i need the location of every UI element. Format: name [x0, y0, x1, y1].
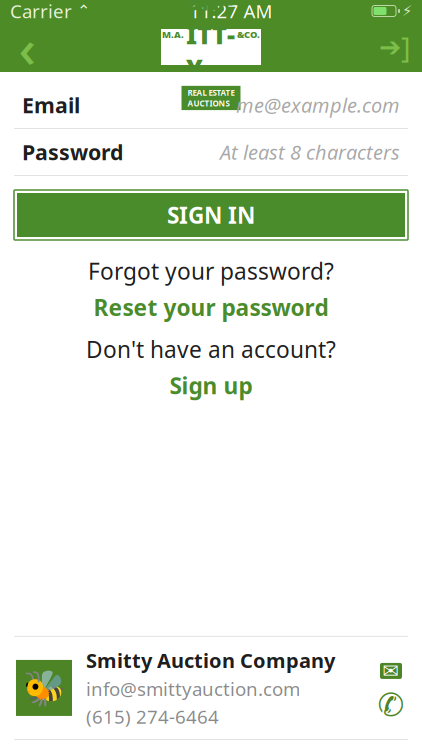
staticText: 🐝: [22, 668, 65, 708]
button[interactable]: Back: [0, 22, 54, 72]
staticText: At least 8 characters: [220, 139, 400, 165]
staticText: ⌃: [72, 2, 90, 20]
staticText: ➔: [379, 32, 401, 62]
button[interactable]: Sign out: [368, 22, 422, 72]
staticText: Email: [22, 91, 80, 119]
staticText: ⚡︎: [402, 3, 412, 19]
staticText: Forgot your password?: [88, 256, 334, 286]
staticText: Reset your password: [93, 292, 328, 322]
button[interactable]: Reset your password: [93, 292, 328, 322]
staticText: me@example.com: [236, 92, 400, 118]
staticText: M.A.: [162, 28, 184, 41]
staticText: REAL ESTATE AUCTIONS: [187, 87, 234, 108]
staticText: info@smittyauction.com: [86, 676, 300, 701]
button[interactable]: Email us: [376, 660, 406, 682]
staticText: ✉: [382, 660, 399, 682]
staticText: SIGN IN: [167, 200, 255, 230]
staticText: Password: [22, 138, 123, 166]
staticText: ✆: [377, 687, 404, 723]
staticText: (615) 274-6464: [86, 704, 219, 729]
button[interactable]: SIGN IN: [14, 190, 408, 240]
button[interactable]: Sign up: [169, 370, 252, 400]
staticText: 11:27 AM: [189, 0, 272, 23]
staticText: SMITTY: [186, 0, 235, 85]
button[interactable]: Call us: [376, 694, 406, 716]
staticText: Sign up: [169, 370, 252, 400]
staticText: ]: [401, 27, 411, 66]
staticText: Smitty Auction Company: [86, 647, 335, 673]
staticText: ‹: [18, 12, 35, 82]
staticText: Carrier: [10, 0, 72, 23]
staticText: &CO.: [237, 28, 260, 41]
staticText: Don't have an account?: [86, 334, 336, 364]
